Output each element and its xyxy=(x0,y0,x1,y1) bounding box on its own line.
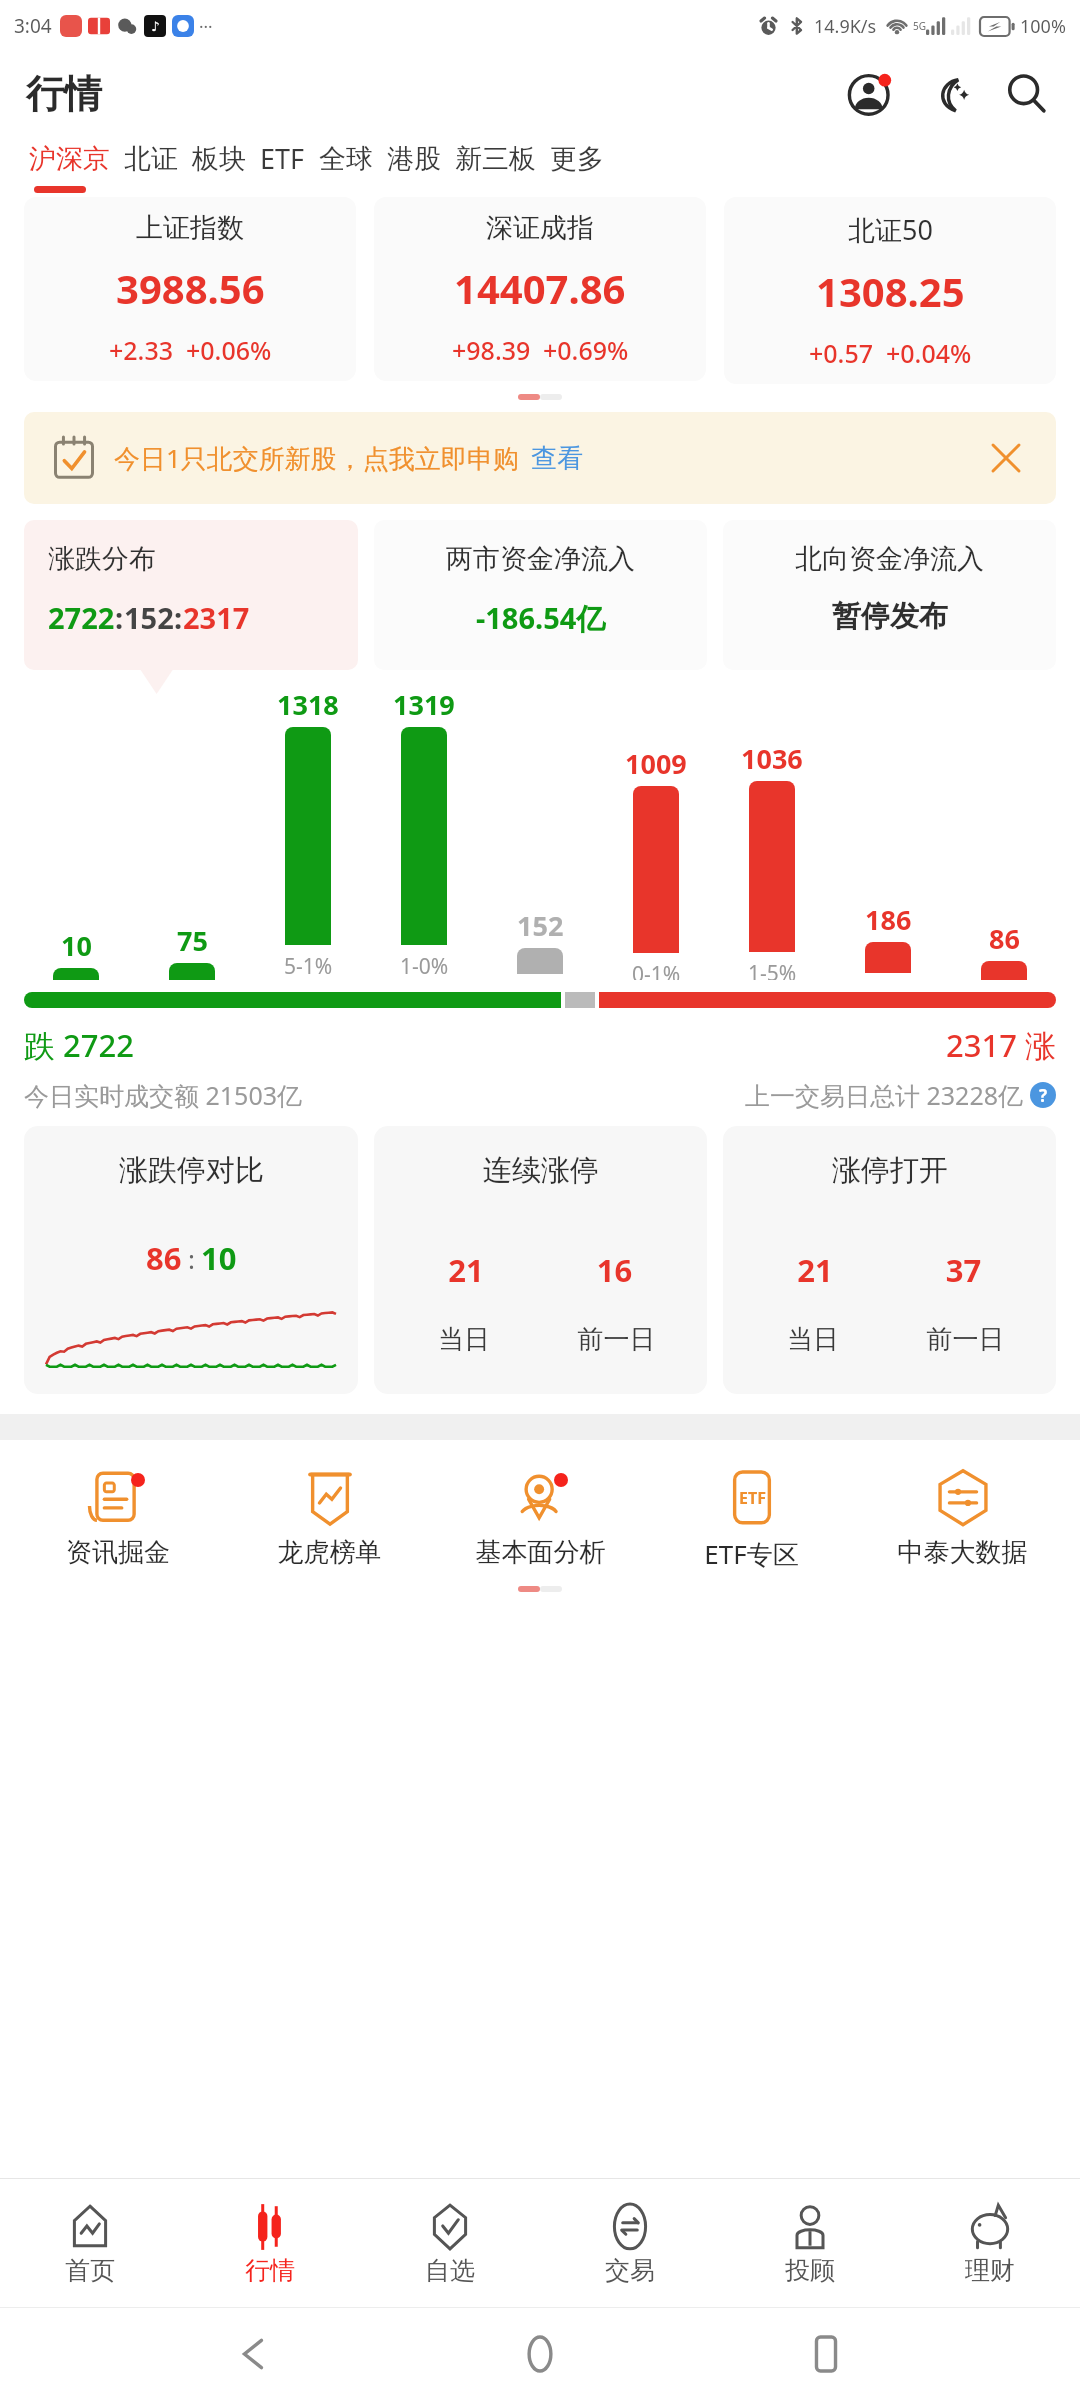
staticText: ETF xyxy=(739,1487,766,1509)
button[interactable]: 北向资金净流入 xyxy=(723,520,1056,670)
staticText: 北向资金净流入 xyxy=(795,542,984,576)
staticText: 3:04 xyxy=(14,13,52,39)
staticText: 21 xyxy=(741,1249,889,1291)
staticText: -186.54亿 xyxy=(476,598,606,638)
staticText: 上一交易日总计 23228亿 xyxy=(745,1078,1024,1112)
staticText: 涨跌停对比 xyxy=(119,1152,264,1189)
staticText: : xyxy=(174,598,183,637)
staticText: 更多 xyxy=(550,142,604,176)
button[interactable]: 涨跌停对比 xyxy=(24,1126,358,1394)
staticText: 上证指数 xyxy=(136,211,244,245)
staticText: 前一日 xyxy=(889,1323,1042,1356)
staticText: 投顾 xyxy=(785,2255,835,2286)
staticText: 1318 xyxy=(277,686,339,723)
button[interactable]: 涨停打开 xyxy=(723,1126,1056,1394)
button[interactable]: 北证50 xyxy=(724,197,1056,384)
button[interactable]: 交易 xyxy=(540,2179,720,2307)
staticText: 行情 xyxy=(245,2255,295,2286)
staticText: 首页 xyxy=(65,2255,115,2286)
staticText: 1036 xyxy=(741,740,803,777)
button[interactable]: 涨跌分布 xyxy=(24,520,358,670)
staticText: 理财 xyxy=(965,2255,1015,2286)
staticText: 板块 xyxy=(192,142,246,176)
staticText: ♪ xyxy=(151,19,160,34)
staticText: 今日1只北交所新股，点我立即申购 xyxy=(114,440,519,476)
staticText: 两市资金净流入 xyxy=(446,542,635,576)
button[interactable]: 更多 xyxy=(543,138,611,180)
staticText: 中泰大数据 xyxy=(857,1536,1068,1569)
button[interactable]: 新三板 xyxy=(448,138,543,180)
button[interactable]: 资讯掘金 xyxy=(12,1462,224,1569)
button[interactable]: Recents xyxy=(794,2322,858,2386)
button[interactable]: 港股 xyxy=(380,138,448,180)
button[interactable]: 深证成指 xyxy=(374,197,706,381)
button[interactable]: 全球 xyxy=(312,138,380,180)
staticText: ETF专区 xyxy=(646,1536,857,1572)
staticText: 10 xyxy=(61,927,92,964)
staticText: 基本面分析 xyxy=(435,1536,646,1569)
button[interactable]: Search xyxy=(1000,67,1054,121)
staticText: 查看 xyxy=(531,442,583,475)
staticText: 自选 xyxy=(425,2255,475,2286)
staticText: +0.69% xyxy=(543,333,629,367)
staticText: 跌 2722 xyxy=(24,1024,134,1066)
staticText: +98.39 xyxy=(452,333,531,367)
button[interactable]: Close xyxy=(984,436,1028,480)
button[interactable]: 首页 xyxy=(0,2179,180,2307)
button[interactable]: Account xyxy=(844,67,898,121)
staticText: 全球 xyxy=(319,142,373,176)
staticText: 14.9K/s xyxy=(814,14,877,39)
staticText: 1-0% xyxy=(366,952,482,980)
button[interactable]: 板块 xyxy=(185,138,253,180)
staticText: 16 xyxy=(540,1249,689,1291)
staticText: 今日实时成交额 21503亿 xyxy=(24,1078,303,1112)
staticText: +0.57 xyxy=(809,336,874,370)
staticText: 2317 xyxy=(183,598,250,637)
button[interactable]: 龙虎榜单 xyxy=(224,1462,435,1569)
staticText: 连续涨停 xyxy=(483,1152,599,1189)
button[interactable]: 基本面分析 xyxy=(435,1462,646,1569)
staticText: 涨跌分布 xyxy=(48,542,156,576)
staticText: 港股 xyxy=(387,142,441,176)
staticText: 1-5% xyxy=(714,959,830,980)
staticText: 86 xyxy=(146,1237,182,1279)
button[interactable]: 沪深京 xyxy=(22,138,117,180)
button[interactable]: 自选 xyxy=(360,2179,540,2307)
button[interactable]: 投顾 xyxy=(720,2179,900,2307)
staticText: 0-1% xyxy=(598,960,714,980)
button[interactable]: 上证指数 xyxy=(24,197,356,381)
button[interactable]: 今日1只北交所新股，点我立即申购 xyxy=(24,412,1056,504)
staticText: 行情 xyxy=(26,70,102,118)
staticText: 10 xyxy=(201,1237,237,1279)
staticText: 5G xyxy=(913,19,926,33)
button[interactable]: Back xyxy=(222,2322,286,2386)
staticText: +2.33 xyxy=(109,333,174,367)
staticText: 2317 涨 xyxy=(946,1024,1056,1066)
staticText: 龙虎榜单 xyxy=(224,1536,435,1569)
button[interactable]: ETF xyxy=(253,136,312,181)
staticText: 1009 xyxy=(625,745,687,782)
button[interactable]: 北证 xyxy=(117,138,185,180)
button[interactable]: 连续涨停 xyxy=(374,1126,707,1394)
staticText: 186 xyxy=(865,901,912,938)
staticText: 北证50 xyxy=(848,211,933,248)
staticText: 3988.56 xyxy=(116,261,265,315)
staticText: 前一日 xyxy=(540,1323,693,1356)
button[interactable]: Info xyxy=(1030,1082,1056,1108)
staticText: 152 xyxy=(517,907,564,944)
button[interactable]: Night mode xyxy=(922,67,976,121)
button[interactable]: 理财 xyxy=(900,2179,1080,2307)
staticText: 14407.86 xyxy=(454,261,626,315)
button[interactable]: 行情 xyxy=(180,2179,360,2307)
staticText: 暂停发布 xyxy=(832,598,948,635)
staticText: : xyxy=(115,598,124,637)
button[interactable]: 两市资金净流入 xyxy=(374,520,707,670)
staticText: 涨停打开 xyxy=(832,1152,948,1189)
staticText: 37 xyxy=(889,1249,1038,1291)
button[interactable]: ETF xyxy=(646,1462,857,1572)
staticText: 152 xyxy=(124,598,174,637)
staticText: 深证成指 xyxy=(486,211,594,245)
button[interactable]: 中泰大数据 xyxy=(857,1462,1068,1569)
staticText: 5-1% xyxy=(250,952,366,980)
button[interactable]: Home xyxy=(508,2322,572,2386)
